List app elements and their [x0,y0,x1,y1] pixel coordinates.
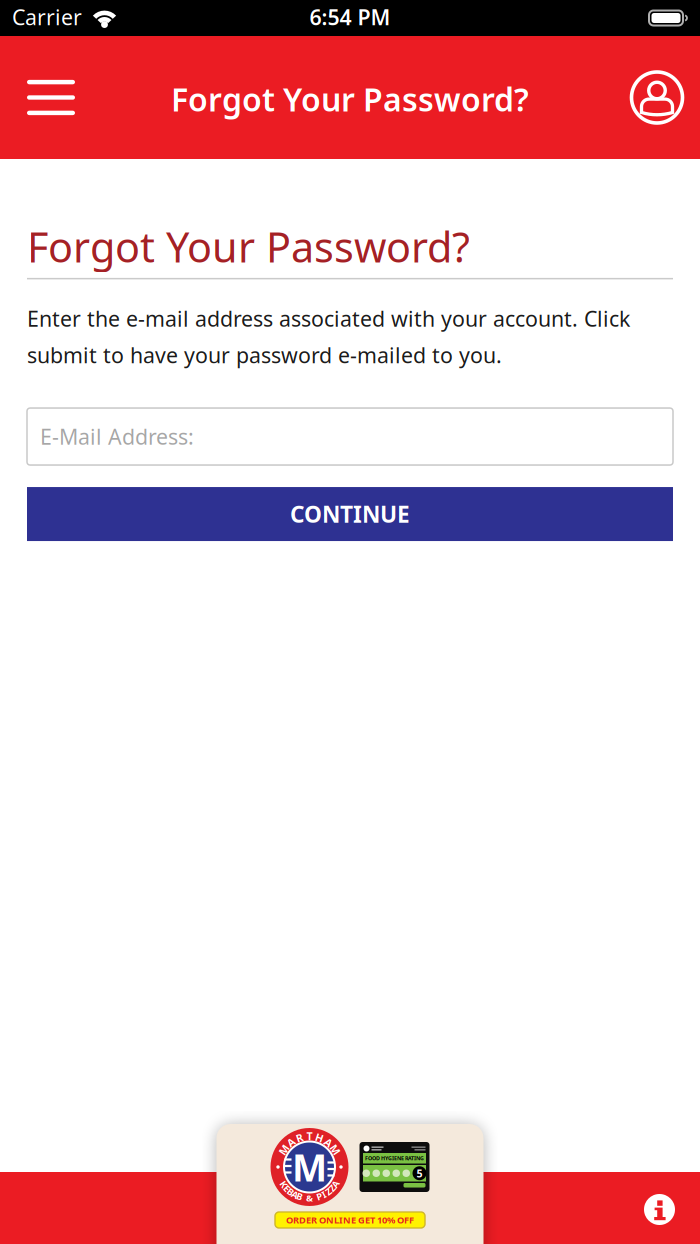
button[interactable]: Menu [0,80,75,115]
staticText: M [292,1142,327,1192]
staticText: FOOD HYGIENE RATING [365,1155,424,1162]
staticText: E [284,1182,289,1194]
staticText: Forgot Your Password? [171,78,529,120]
staticText: T [306,1129,312,1143]
button[interactable]: Info [644,1194,700,1244]
staticText [303,1191,305,1204]
button[interactable]: CONTINUE [27,487,673,541]
staticText: R [296,1130,303,1145]
staticText: ORDER ONLINE GET 10% OFF [286,1214,414,1226]
staticText: Carrier [12,3,82,31]
staticText: A [287,1135,294,1149]
staticText: Z [326,1185,331,1198]
staticText: M [330,1143,340,1157]
staticText: M [279,1143,289,1157]
staticText: K [281,1178,287,1190]
button[interactable]: Account [630,70,700,124]
staticText: B [288,1185,294,1198]
staticText: A [292,1188,298,1201]
staticText: 6:54 PM [309,3,390,31]
staticText: & [306,1192,313,1204]
staticText: E-Mail Address: [40,422,194,451]
button[interactable]: E-Mail Address [27,408,673,465]
staticText: Z [329,1182,334,1194]
staticText: A [325,1135,332,1149]
staticText: Forgot Your Password? [27,219,470,274]
staticText: A [332,1178,338,1190]
staticText: 5 [416,1166,422,1180]
staticText [313,1191,315,1204]
staticText: CONTINUE [290,499,410,529]
staticText: Enter the e-mail address associated with… [27,304,630,369]
staticText: H [315,1130,323,1145]
staticText: I [322,1188,326,1201]
staticText: P [316,1190,322,1203]
staticText: B [297,1190,303,1203]
